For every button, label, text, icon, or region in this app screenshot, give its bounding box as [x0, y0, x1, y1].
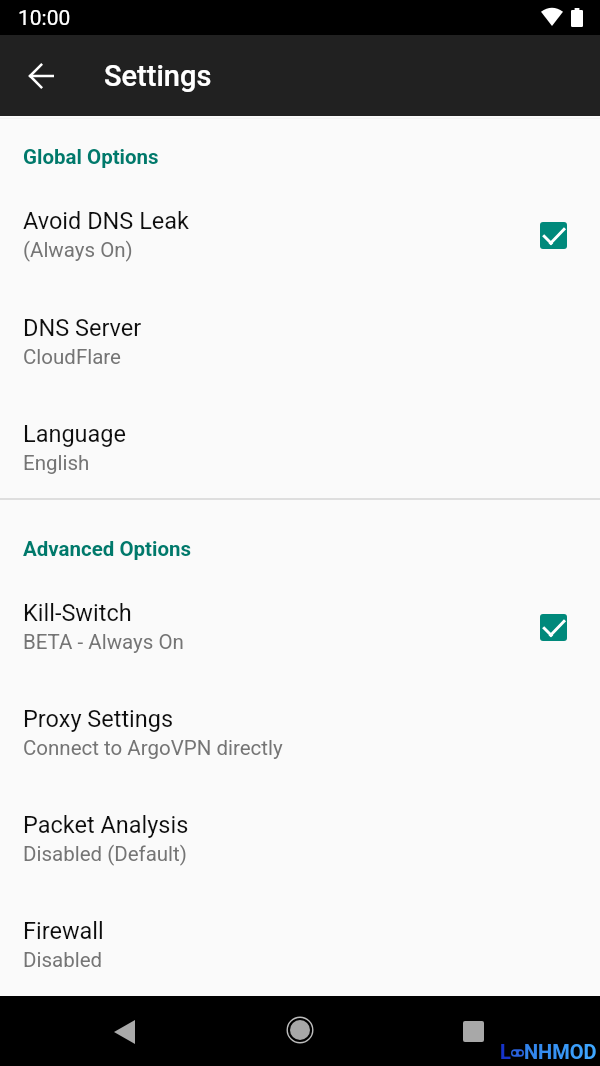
button[interactable]: Toggle Avoid DNS Leak: [540, 222, 567, 249]
staticText: L: [500, 1040, 511, 1063]
staticText: NHMOD: [524, 1040, 597, 1063]
staticText: Disabled (Default): [23, 842, 187, 866]
button[interactable]: DNS Server: [0, 298, 600, 388]
button[interactable]: Home: [274, 1004, 326, 1056]
button[interactable]: Proxy Settings: [0, 689, 600, 779]
other: Battery full: [571, 8, 583, 27]
button[interactable]: Navigate back: [17, 52, 65, 100]
staticText: Kill-Switch: [23, 599, 132, 627]
staticText: Avoid DNS Leak: [23, 207, 189, 235]
staticText: Global Options: [23, 145, 159, 169]
button[interactable]: Avoid DNS Leak: [0, 191, 600, 281]
other: Wi-Fi connected: [541, 8, 563, 26]
staticText: BETA - Always On: [23, 630, 184, 654]
staticText: Disabled: [23, 948, 103, 972]
staticText: Connect to ArgoVPN directly: [23, 736, 283, 760]
staticText: Settings: [104, 59, 212, 93]
button[interactable]: Language: [0, 404, 600, 494]
button[interactable]: Packet Analysis: [0, 795, 600, 885]
staticText: English: [23, 451, 90, 475]
button[interactable]: Toggle Kill-Switch: [540, 614, 567, 641]
staticText: Packet Analysis: [23, 811, 189, 839]
button[interactable]: Firewall: [0, 901, 600, 991]
button[interactable]: Recent apps: [447, 1005, 499, 1057]
staticText: CloudFlare: [23, 345, 121, 369]
staticText: Language: [23, 420, 127, 448]
staticText: 10:00: [18, 6, 71, 31]
staticText: Firewall: [23, 917, 104, 945]
button[interactable]: Kill-Switch: [0, 583, 600, 673]
staticText: (Always On): [23, 238, 133, 262]
button[interactable]: Back: [98, 1006, 150, 1058]
staticText: Proxy Settings: [23, 705, 174, 733]
staticText: Advanced Options: [23, 537, 192, 561]
staticText: DNS Server: [23, 314, 142, 342]
